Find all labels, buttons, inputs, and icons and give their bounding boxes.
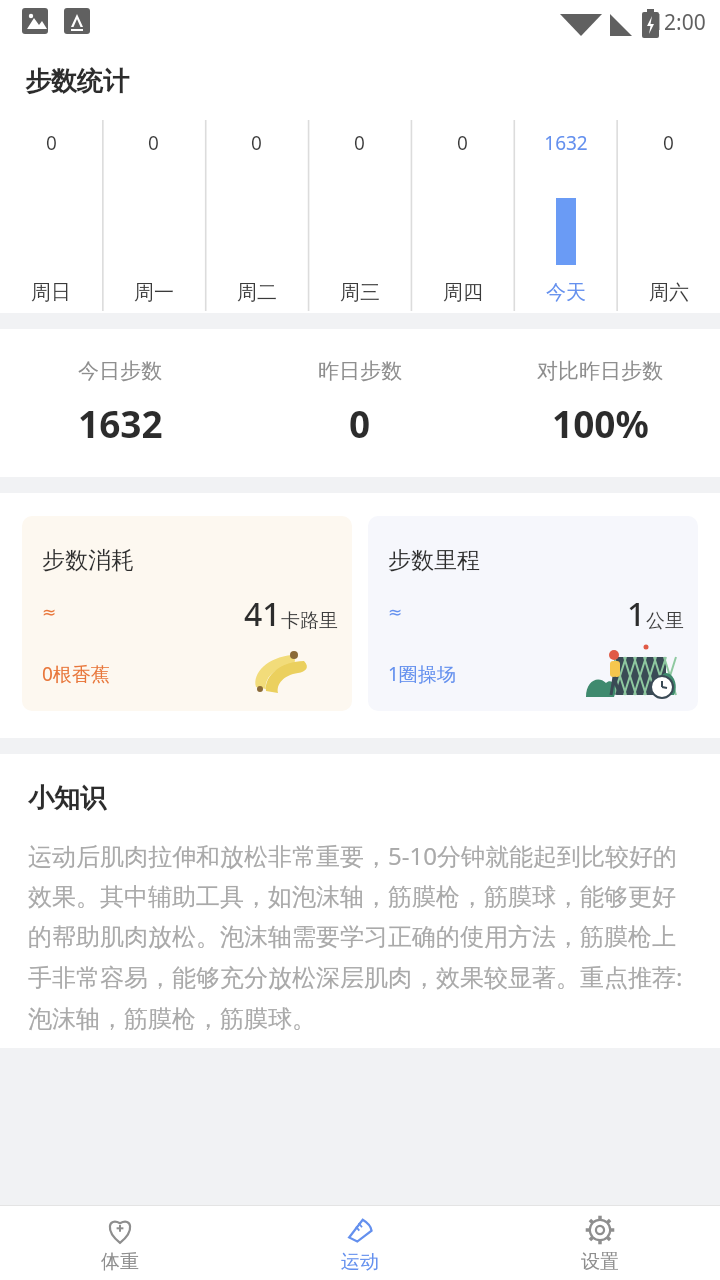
staticText: 1圈操场 bbox=[388, 661, 456, 687]
staticText: 运动后肌肉拉伸和放松非常重要，5-10分钟就能起到比较好的效果。其中辅助工具，如… bbox=[28, 839, 692, 1034]
staticText: 0 bbox=[354, 130, 365, 156]
staticText: 周二 bbox=[237, 280, 277, 305]
staticText: 周三 bbox=[340, 280, 380, 305]
staticText: 设置 bbox=[581, 1250, 619, 1274]
button[interactable]: 步数里程 bbox=[368, 516, 698, 711]
staticText: 步数消耗 bbox=[42, 546, 134, 575]
staticText: 41 bbox=[244, 592, 281, 636]
staticText: ≈ bbox=[388, 602, 403, 622]
button[interactable]: 运动 bbox=[240, 1206, 480, 1280]
staticText: 100% bbox=[552, 398, 649, 448]
staticText: 卡路里 bbox=[281, 609, 338, 633]
staticText: 今天 bbox=[546, 280, 586, 305]
button[interactable]: 步数消耗 bbox=[22, 516, 352, 711]
button[interactable]: 0 bbox=[102, 118, 205, 313]
staticText: ≈ bbox=[42, 602, 57, 622]
staticText: 周一 bbox=[134, 280, 174, 305]
staticText: 0根香蕉 bbox=[42, 661, 110, 687]
button[interactable]: 昨日步数 bbox=[240, 329, 480, 477]
staticText: 小知识 bbox=[28, 782, 106, 815]
staticText: 体重 bbox=[101, 1250, 139, 1274]
button[interactable]: 对比昨日步数 bbox=[480, 329, 720, 477]
button[interactable]: 体重 bbox=[0, 1206, 240, 1280]
staticText: 对比昨日步数 bbox=[537, 358, 663, 384]
staticText: 周六 bbox=[649, 280, 689, 305]
staticText: 1632 bbox=[544, 130, 588, 156]
staticText: 0 bbox=[349, 398, 371, 448]
staticText: 1632 bbox=[78, 398, 163, 448]
staticText: 今日步数 bbox=[78, 358, 162, 384]
staticText: 0 bbox=[251, 130, 262, 156]
staticText: 公里 bbox=[646, 609, 684, 633]
staticText: 0 bbox=[663, 130, 674, 156]
staticText: 周四 bbox=[443, 280, 483, 305]
staticText: 步数统计 bbox=[25, 65, 129, 98]
button[interactable]: 1632 bbox=[514, 118, 617, 313]
button[interactable]: 0 bbox=[0, 118, 102, 313]
button[interactable]: 0 bbox=[411, 118, 514, 313]
staticText: 周日 bbox=[31, 280, 71, 305]
button[interactable]: 设置 bbox=[480, 1206, 720, 1280]
button[interactable]: 0 bbox=[617, 118, 720, 313]
staticText: 12:00 bbox=[652, 8, 706, 37]
button[interactable]: 今日步数 bbox=[0, 329, 240, 477]
staticText: 1 bbox=[627, 592, 646, 636]
button[interactable]: 0 bbox=[308, 118, 411, 313]
staticText: 昨日步数 bbox=[318, 358, 402, 384]
button[interactable]: 0 bbox=[205, 118, 308, 313]
staticText: 0 bbox=[46, 130, 57, 156]
staticText: 0 bbox=[148, 130, 159, 156]
staticText: 0 bbox=[457, 130, 468, 156]
staticText: 运动 bbox=[341, 1250, 379, 1274]
staticText: 步数里程 bbox=[388, 546, 480, 575]
